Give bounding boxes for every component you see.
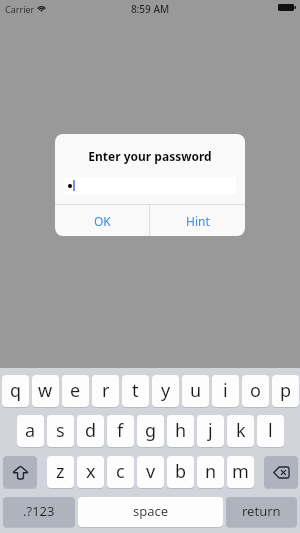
button[interactable]: v [137,456,164,489]
staticText: space [133,502,169,520]
staticText: z [56,459,65,484]
button[interactable]: y [152,375,179,408]
button[interactable]: w [32,375,59,408]
button[interactable]: i [212,375,239,408]
button[interactable]: n [197,456,224,489]
button[interactable]: d [77,415,104,448]
button[interactable]: l [257,415,284,448]
staticText: x [86,459,96,484]
staticText: v [146,459,156,484]
button[interactable]: e [62,375,89,408]
staticText: t [132,378,139,403]
staticText: j [208,418,213,443]
staticText: q [10,378,22,403]
button[interactable]: c [107,456,134,489]
staticText: c [116,459,125,484]
staticText: m [232,459,249,484]
button[interactable]: j [197,415,224,448]
staticText: Enter your password [55,148,245,164]
staticText: w [38,378,53,403]
button[interactable]: return [226,497,297,528]
staticText: 8:59 AM [0,2,300,16]
staticText: f [117,418,124,443]
staticText: o [250,378,261,403]
staticText: b [175,459,187,484]
button[interactable]: h [167,415,194,448]
staticText: return [242,502,281,520]
button[interactable]: t [122,375,149,408]
staticText: Carrier [5,3,35,15]
staticText: Hint [186,213,210,229]
staticText: y [161,378,171,403]
staticText: r [102,378,110,403]
staticText: s [56,418,65,443]
button[interactable]: x [77,456,104,489]
staticText: p [280,378,292,403]
staticText: l [268,418,273,443]
staticText: g [145,418,157,443]
button[interactable]: Hint [150,205,245,236]
button[interactable]: m [227,456,254,489]
button[interactable]: f [107,415,134,448]
button[interactable]: z [47,456,74,489]
button[interactable]: OK [55,205,149,236]
button[interactable]: b [167,456,194,489]
button[interactable]: space [78,497,223,528]
staticText: a [25,418,36,443]
button[interactable]: p [272,375,299,408]
button[interactable]: .?123 [3,497,75,528]
button[interactable] [64,177,236,194]
button[interactable]: u [182,375,209,408]
staticText: k [236,418,246,443]
staticText: i [223,378,228,403]
staticText: u [190,378,202,403]
staticText: n [205,459,217,484]
button[interactable]: r [92,375,119,408]
button[interactable]: k [227,415,254,448]
staticText: d [85,418,97,443]
button[interactable]: o [242,375,269,408]
staticText: .?123 [23,502,55,520]
button[interactable]: Backspace [264,456,298,489]
staticText: e [70,378,81,403]
button[interactable]: s [47,415,74,448]
button[interactable]: a [17,415,44,448]
staticText: OK [94,213,111,229]
button[interactable]: Shift [3,456,37,489]
staticText: h [175,418,187,443]
button[interactable]: g [137,415,164,448]
button[interactable]: q [2,375,29,408]
